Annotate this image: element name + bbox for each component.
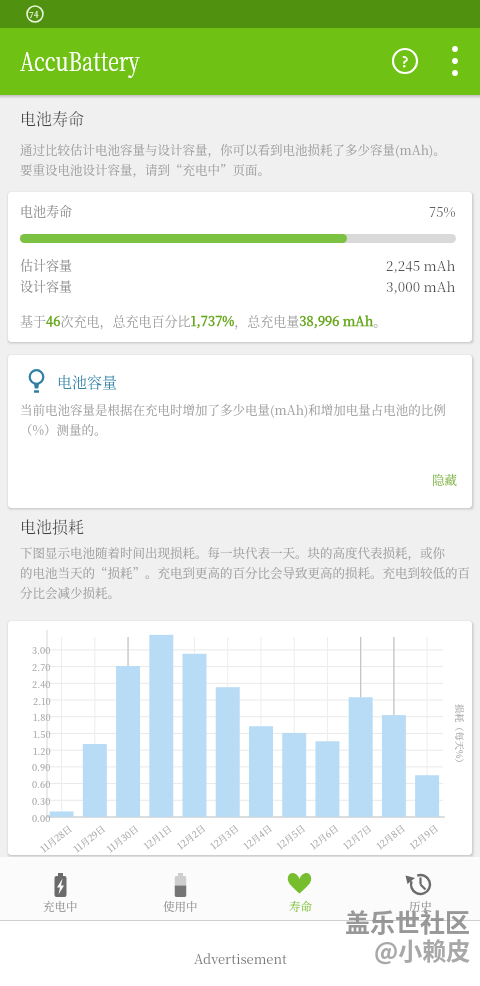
staticText: 的电池当天的“损耗”。充电到更高的百分比会导致更高的损耗。充电到较低的百	[20, 564, 471, 582]
staticText: （%）测量的。	[20, 421, 107, 439]
staticText: 2,245 mAh	[386, 255, 456, 274]
staticText: 要重设电池设计容量，请到“充电中”页面。	[20, 161, 271, 179]
button[interactable]	[441, 42, 469, 80]
staticText: ?	[402, 51, 409, 71]
button[interactable]: Advertisement	[0, 921, 480, 986]
button[interactable]: 寿命	[252, 857, 348, 920]
staticText: @小赖皮	[374, 932, 471, 967]
staticText: 电池容量	[57, 371, 118, 393]
staticText: 充电中	[43, 898, 78, 915]
button[interactable]: 充电中	[12, 857, 108, 920]
staticText: 75%	[429, 202, 456, 221]
staticText: 使用中	[163, 898, 198, 915]
staticText: 下图显示电池随着时间出现损耗。每一块代表一天。块的高度代表损耗，或你	[20, 544, 446, 562]
staticText: 电池寿命	[20, 107, 85, 130]
staticText: 寿命	[289, 898, 312, 915]
staticText: 3,000 mAh	[386, 276, 456, 295]
button[interactable]: 电池寿命	[8, 192, 472, 342]
button[interactable]: 使用中	[132, 857, 228, 920]
button[interactable]: 历史	[372, 857, 468, 920]
staticText: 电池寿命	[20, 201, 73, 220]
staticText: 当前电池容量是根据在充电时增加了多少电量(mAh)和增加电量占电池的比例	[20, 401, 446, 419]
staticText: 分比会减少损耗。	[20, 584, 121, 602]
staticText: 历史	[409, 898, 432, 915]
staticText: 通过比较估计电池容量与设计容量，你可以看到电池损耗了多少容量(mAh)。	[20, 141, 446, 159]
button[interactable]: ?	[389, 45, 421, 77]
button[interactable]: 隐藏	[420, 466, 470, 494]
staticText: 74	[29, 8, 39, 20]
staticText: 设计容量	[20, 276, 73, 295]
staticText: 盖乐世社区	[345, 903, 471, 939]
staticText: 基于46次充电，总充电百分比1,737%，总充电量38,996 mAh。	[20, 311, 387, 330]
staticText: AccuBattery	[20, 41, 140, 78]
staticText: 估计容量	[20, 255, 73, 274]
staticText: 隐藏	[432, 471, 458, 489]
staticText: Advertisement	[194, 949, 287, 968]
staticText: 电池损耗	[20, 515, 85, 538]
